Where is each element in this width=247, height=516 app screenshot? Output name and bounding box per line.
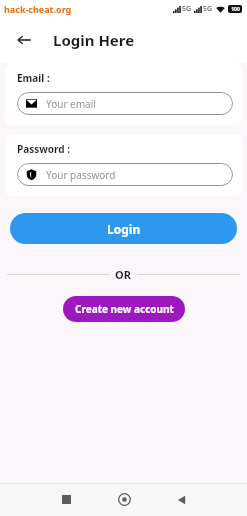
staticText: Login — [107, 221, 141, 237]
staticText: Your password — [46, 168, 116, 182]
staticText: Password : — [17, 142, 71, 156]
button[interactable]: Your password — [17, 163, 233, 186]
staticText: 5G — [203, 4, 213, 14]
button[interactable]: Your email — [17, 92, 233, 115]
staticText: Login Here — [53, 30, 135, 50]
staticText: 100 — [231, 6, 240, 13]
staticText: Create new account — [75, 302, 174, 316]
button[interactable]: Back — [9, 25, 39, 55]
staticText: Your email — [46, 97, 96, 111]
button[interactable]: Login — [10, 213, 237, 244]
button[interactable]: Create new account — [63, 296, 185, 322]
staticText: hack-cheat.org — [4, 3, 72, 15]
staticText: Email : — [17, 71, 50, 85]
button[interactable]: Home — [107, 483, 141, 516]
button[interactable]: Recent apps — [49, 483, 83, 516]
staticText: 5G — [182, 4, 192, 14]
button[interactable]: Back — [165, 483, 199, 516]
staticText: OR — [115, 267, 131, 282]
